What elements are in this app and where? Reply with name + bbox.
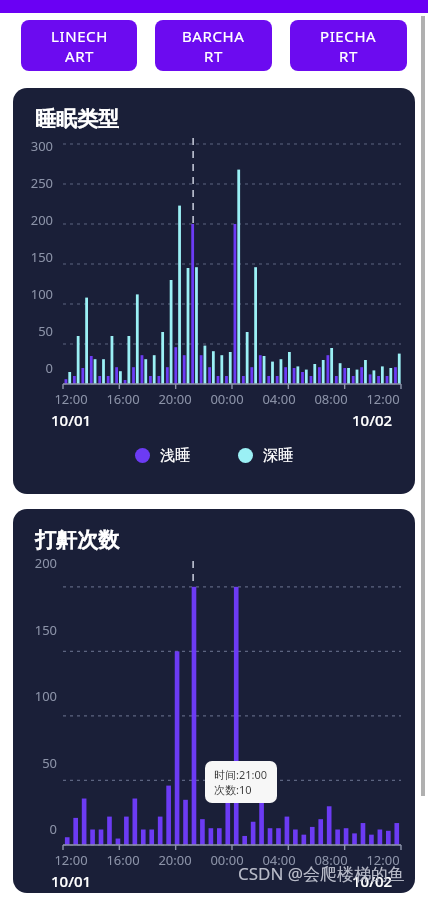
button[interactable]: PIECHA [290, 20, 407, 71]
staticText: 浅睡 [160, 446, 190, 465]
button[interactable]: 时间:21:00 [205, 761, 277, 803]
staticText: 次数:10 [214, 782, 252, 797]
staticText: 20:00 [149, 851, 201, 869]
staticText: 10/02 [352, 871, 393, 891]
staticText: 04:00 [253, 851, 305, 869]
staticText: 150 [13, 621, 57, 639]
staticText: 250 [13, 174, 53, 192]
staticText: 10/01 [51, 871, 92, 891]
staticText: 12:00 [45, 851, 97, 869]
staticText: RT [339, 46, 358, 66]
staticText: 300 [13, 137, 53, 155]
staticText: 08:00 [305, 390, 357, 408]
staticText: 100 [13, 687, 57, 705]
staticText: 00:00 [201, 851, 253, 869]
staticText: 200 [13, 211, 53, 229]
staticText: 16:00 [97, 851, 149, 869]
staticText: 08:00 [305, 851, 357, 869]
staticText: CSDN @会爬楼梯的鱼 [238, 862, 406, 885]
staticText: 10/02 [352, 410, 393, 430]
staticText: 打鼾次数 [35, 527, 119, 553]
staticText: 150 [13, 248, 53, 266]
button[interactable]: 深睡 [234, 442, 297, 469]
staticText: 12:00 [357, 390, 409, 408]
button[interactable]: 打鼾次数 [13, 509, 415, 893]
staticText: 100 [13, 285, 53, 303]
staticText: PIECHA [320, 26, 377, 46]
staticText: 时间:21:00 [214, 767, 268, 782]
staticText: 04:00 [253, 390, 305, 408]
staticText: 0 [13, 359, 53, 377]
staticText: ART [65, 46, 95, 66]
button[interactable]: LINECH [21, 20, 137, 71]
staticText: 50 [13, 322, 53, 340]
staticText: 20:00 [149, 390, 201, 408]
staticText: 200 [13, 554, 57, 572]
staticText: 12:00 [357, 851, 409, 869]
staticText: 睡眠类型 [35, 106, 119, 132]
button[interactable]: BARCHA [155, 20, 272, 71]
staticText: 16:00 [97, 390, 149, 408]
staticText: 12:00 [45, 390, 97, 408]
staticText: 10/01 [51, 410, 92, 430]
staticText: 00:00 [201, 390, 253, 408]
staticText: LINECH [51, 26, 108, 46]
staticText: 深睡 [263, 446, 293, 465]
staticText: 0 [13, 820, 57, 838]
button[interactable]: 睡眠类型 [13, 88, 415, 494]
staticText: BARCHA [182, 26, 245, 46]
staticText: 50 [13, 754, 57, 772]
staticText: RT [204, 46, 223, 66]
button[interactable]: 浅睡 [131, 442, 194, 469]
